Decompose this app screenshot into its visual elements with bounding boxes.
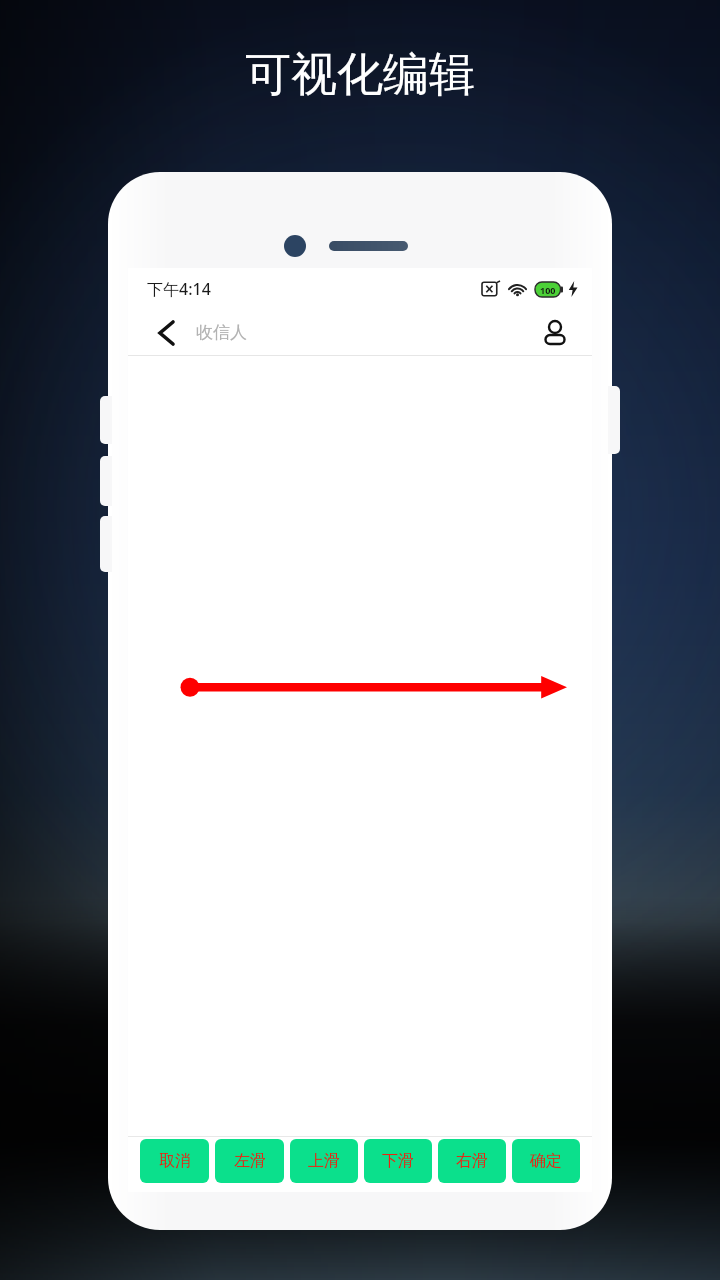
staticText: 下午4:14 xyxy=(147,278,211,300)
button[interactable]: 取消 xyxy=(140,1139,209,1183)
button[interactable]: 下滑 xyxy=(364,1139,432,1183)
staticText: 右滑 xyxy=(456,1151,488,1171)
button[interactable]: 上滑 xyxy=(290,1139,358,1183)
staticText: 100 xyxy=(540,284,556,296)
staticText: 下滑 xyxy=(382,1151,414,1171)
staticText: 上滑 xyxy=(308,1151,340,1171)
button[interactable]: Back xyxy=(150,317,182,349)
staticText: 可视化编辑 xyxy=(245,46,475,104)
button[interactable]: Contacts xyxy=(536,314,574,352)
staticText: 收信人 xyxy=(196,322,247,343)
button[interactable]: 确定 xyxy=(512,1139,580,1183)
button[interactable]: 右滑 xyxy=(438,1139,506,1183)
staticText: 取消 xyxy=(159,1151,191,1171)
staticText: 确定 xyxy=(530,1151,562,1171)
button[interactable]: 左滑 xyxy=(215,1139,284,1183)
staticText: 左滑 xyxy=(234,1151,266,1171)
